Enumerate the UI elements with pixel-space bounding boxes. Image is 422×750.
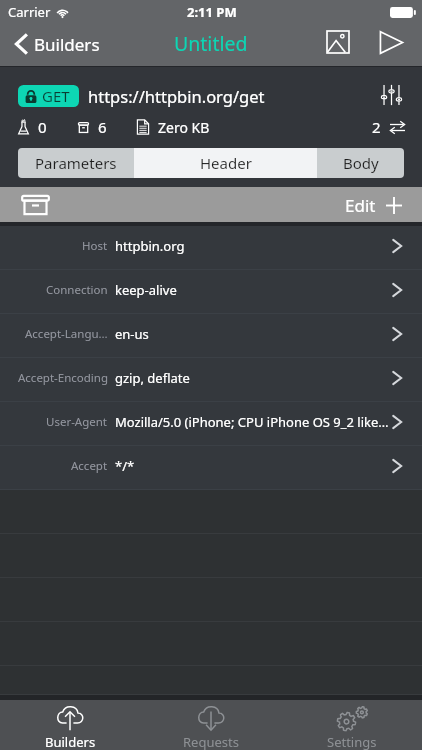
staticText: Untitled (174, 30, 248, 57)
button[interactable]: Body (317, 148, 404, 178)
staticText: Connection (46, 282, 108, 298)
button[interactable]: Request options (374, 85, 408, 107)
button[interactable]: Connection (0, 270, 422, 314)
staticText: Mozilla/5.0 (iPhone; CPU iPhone OS 9_2 l… (115, 413, 392, 431)
button[interactable]: User-Agent (0, 402, 422, 446)
button[interactable]: Host (0, 226, 422, 270)
button[interactable]: Add (381, 192, 407, 218)
staticText: Settings (327, 733, 377, 750)
staticText: 2 (372, 117, 381, 137)
staticText: gzip, deflate (115, 369, 392, 387)
staticText: httpbin.org (115, 237, 392, 255)
button[interactable]: Accept-Encoding (0, 358, 422, 402)
staticText: Accept-Langu… (25, 326, 108, 342)
staticText: Builders (45, 733, 96, 750)
staticText: Body (343, 153, 379, 173)
staticText: Host (82, 238, 108, 254)
button[interactable]: GET (18, 85, 79, 107)
staticText: Zero KB (158, 118, 210, 137)
staticText: en-us (115, 325, 392, 343)
button[interactable]: Settings (281, 700, 422, 750)
staticText: 2:11 PM (187, 3, 237, 21)
button[interactable]: Builders (0, 24, 108, 66)
staticText: */* (115, 457, 392, 475)
staticText: Accept-Encoding (18, 370, 108, 386)
button[interactable]: Requests (140, 700, 281, 750)
button[interactable]: Attach image (317, 21, 359, 63)
staticText: https://httpbin.org/get (88, 85, 265, 107)
staticText: Carrier (8, 3, 51, 21)
staticText: Accept (71, 458, 108, 474)
staticText: User-Agent (46, 414, 108, 430)
button[interactable]: Send request (370, 21, 412, 63)
staticText: Requests (183, 733, 239, 750)
staticText: keep-alive (115, 281, 392, 299)
staticText: 6 (98, 117, 107, 137)
button[interactable]: Parameters (18, 148, 134, 178)
staticText: Parameters (35, 153, 117, 173)
button[interactable]: Archive (10, 187, 60, 222)
button[interactable]: Edit (341, 194, 380, 217)
staticText: Header (200, 153, 252, 173)
button[interactable]: Header (134, 148, 317, 178)
button[interactable]: Accept (0, 446, 422, 490)
staticText: 0 (38, 117, 47, 137)
button[interactable]: Builders (0, 700, 140, 750)
button[interactable]: Accept-Langu… (0, 314, 422, 358)
staticText: GET (42, 86, 70, 106)
staticText: Builders (34, 33, 100, 56)
